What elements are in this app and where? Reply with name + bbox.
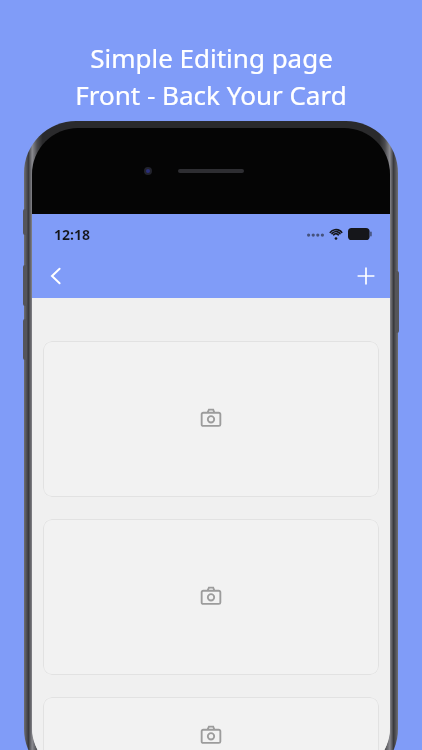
- staticText: Simple Editing page: [90, 40, 333, 75]
- staticText: 12:18: [54, 225, 90, 244]
- button[interactable]: Back: [32, 254, 80, 298]
- button[interactable]: Add photo: [43, 341, 379, 497]
- button[interactable]: Add photo: [43, 519, 379, 675]
- button[interactable]: Add photo: [43, 697, 379, 750]
- staticText: Front - Back Your Card: [75, 77, 347, 112]
- button[interactable]: Add: [342, 254, 390, 298]
